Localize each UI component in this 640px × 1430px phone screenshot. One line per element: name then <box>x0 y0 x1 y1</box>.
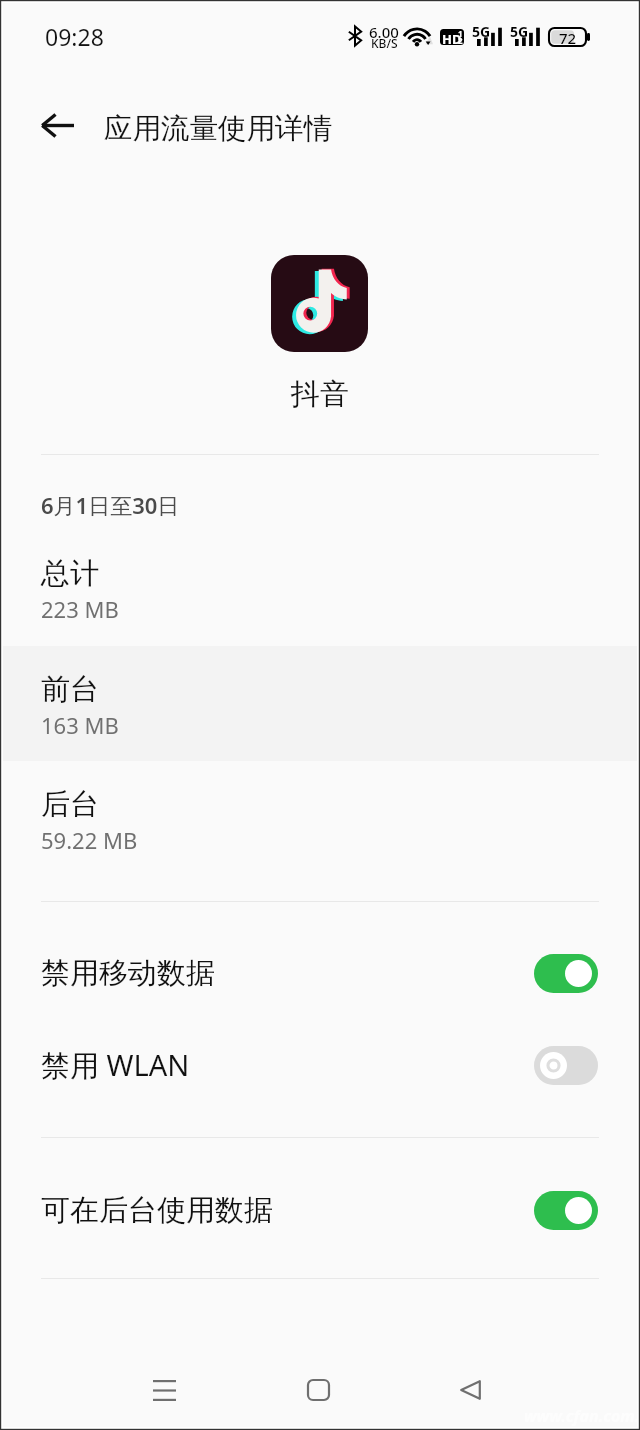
button[interactable]: 禁用 WLAN <box>0 1019 640 1111</box>
staticText: 5G <box>472 22 491 41</box>
staticText: 1 <box>458 29 463 39</box>
staticText: 禁用 WLAN <box>41 1045 190 1085</box>
staticText: 后台 <box>41 786 99 823</box>
button[interactable]: 主屏幕 <box>278 1350 358 1430</box>
button[interactable]: 关闭 <box>534 1046 598 1085</box>
button[interactable]: 最近任务 <box>124 1350 204 1430</box>
staticText: 6.00 <box>369 22 399 42</box>
button[interactable]: 返回 <box>26 94 88 156</box>
staticText: 223 MB <box>41 594 119 624</box>
staticText: 应用流量使用详情 <box>104 111 332 147</box>
button[interactable]: 可在后台使用数据 <box>0 1164 640 1256</box>
staticText: 6月1日至30日 <box>41 490 180 520</box>
staticText: 禁用移动数据 <box>41 955 215 992</box>
staticText: 59.22 MB <box>41 825 138 855</box>
staticText: 前台 <box>41 671 99 708</box>
staticText: HD <box>442 30 462 45</box>
staticText: 2 <box>458 35 463 45</box>
staticText: KB/S <box>371 35 398 51</box>
staticText: 5G <box>510 22 529 41</box>
staticText: 可在后台使用数据 <box>41 1192 273 1229</box>
staticText: 72 <box>559 28 577 46</box>
button[interactable]: 开启 <box>534 954 598 993</box>
button[interactable]: 返回 <box>430 1350 510 1430</box>
staticText: 09:28 <box>45 21 104 52</box>
button[interactable]: 开启 <box>534 1191 598 1230</box>
staticText: 163 MB <box>41 710 119 740</box>
staticText: 总计 <box>41 555 99 592</box>
button[interactable]: 禁用移动数据 <box>0 927 640 1019</box>
staticText: www.cfan.com.cn <box>524 1405 640 1427</box>
staticText: 抖音 <box>291 376 349 413</box>
button[interactable] <box>0 646 640 761</box>
